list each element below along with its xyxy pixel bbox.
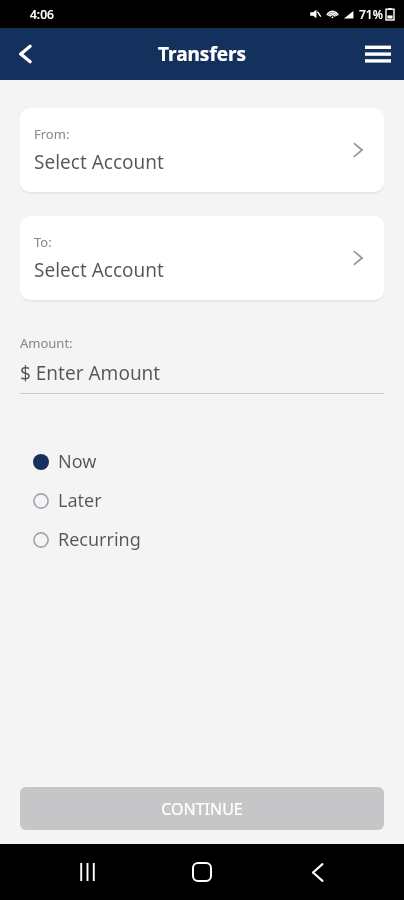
button[interactable]: Later xyxy=(0,481,404,520)
staticText: Now xyxy=(58,449,97,474)
staticText: $ Enter Amount xyxy=(20,360,161,386)
button[interactable]: Now xyxy=(0,442,404,481)
staticText: CONTINUE xyxy=(161,798,243,820)
button[interactable]: From: xyxy=(20,108,384,192)
button[interactable]: To: xyxy=(20,216,384,300)
staticText: Recurring xyxy=(58,527,141,552)
staticText: Select Account xyxy=(34,149,164,175)
button[interactable]: Menu xyxy=(352,28,404,80)
button[interactable]: Back xyxy=(0,28,52,80)
staticText: Select Account xyxy=(34,257,164,283)
staticText: Amount: xyxy=(20,334,73,352)
button[interactable]: Back xyxy=(289,844,345,900)
button[interactable]: CONTINUE xyxy=(20,787,384,830)
button[interactable]: Recent apps xyxy=(59,844,115,900)
button[interactable]: Recurring xyxy=(0,520,404,559)
staticText: 4:06 xyxy=(30,6,54,22)
staticText: Transfers xyxy=(158,41,247,67)
staticText: Later xyxy=(58,488,102,513)
button[interactable]: Amount: xyxy=(20,334,384,394)
button[interactable]: Home xyxy=(174,844,230,900)
staticText: To: xyxy=(34,233,52,251)
staticText: From: xyxy=(34,125,70,143)
staticText: 71% xyxy=(359,6,383,22)
